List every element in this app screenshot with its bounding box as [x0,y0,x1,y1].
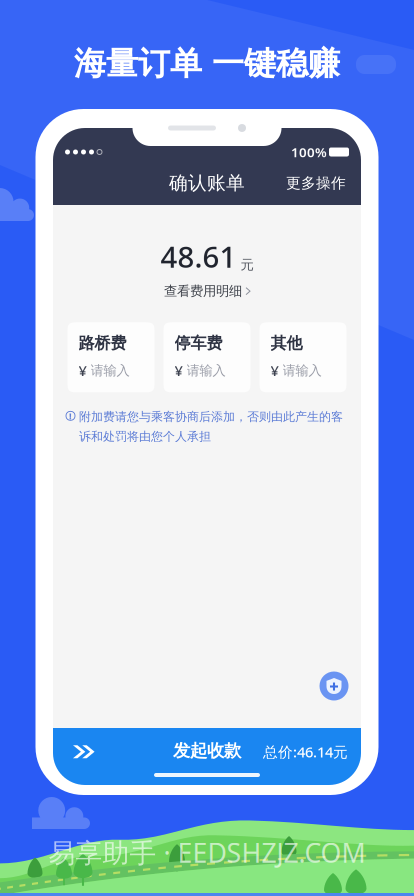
staticText: 其他 [270,333,302,353]
staticText: 确认账单 [169,171,245,194]
staticText: 海量订单 一键稳赚 [74,44,340,83]
staticText: 查看费用明细 [164,283,242,299]
button[interactable]: 其他 [259,322,346,392]
button[interactable]: 路桥费 [67,322,154,392]
button[interactable]: 发起收款 [53,728,361,785]
staticText: 100% [291,143,327,161]
staticText: 发起收款 [173,740,241,761]
staticText: 总价:46.14元 [263,742,348,761]
staticText: 路桥费 [78,333,126,353]
button[interactable]: 添加保障 [315,667,353,705]
staticText: ¥ [270,361,278,380]
staticText: ¥ [78,361,86,380]
staticText: ¥ [174,361,182,380]
staticText: 易享助手 · EEDSHZJZ.COM [48,835,365,870]
button[interactable]: 更多操作 [283,169,349,197]
button[interactable]: 查看费用明细 [164,281,250,301]
staticText: ! [69,410,72,422]
staticText: 更多操作 [286,174,346,192]
staticText: 元 [240,257,253,273]
staticText: 48.61 [160,237,236,276]
staticText: 请输入 [90,362,129,379]
button[interactable]: 停车费 [163,322,250,392]
staticText: 停车费 [174,333,222,353]
staticText: 附加费请您与乘客协商后添加，否则由此产生的客诉和处罚将由您个人承担 [79,409,343,444]
staticText: 请输入 [282,362,321,379]
staticText: 请输入 [186,362,225,379]
